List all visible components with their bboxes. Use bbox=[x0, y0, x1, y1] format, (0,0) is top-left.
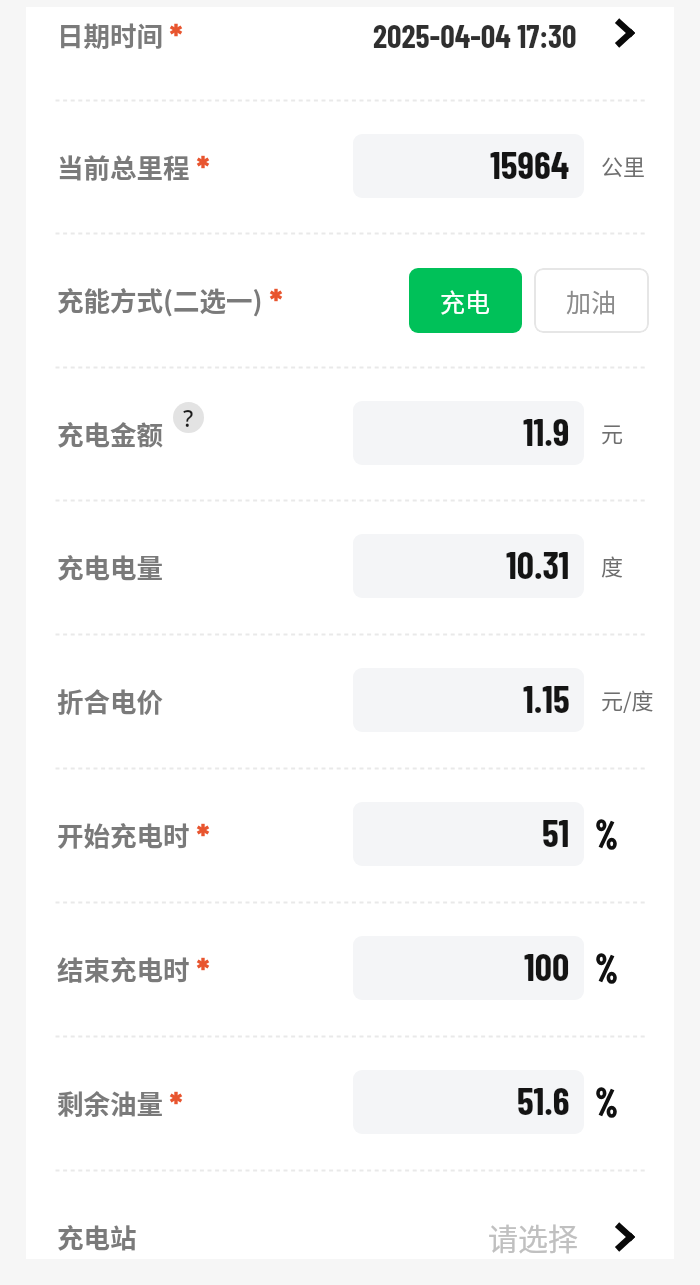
button[interactable]: 11.9 bbox=[353, 401, 584, 465]
staticText: 11.9 bbox=[523, 408, 570, 454]
staticText: 度 bbox=[601, 549, 624, 581]
staticText: 充能方式(二选一) bbox=[57, 280, 263, 318]
staticText: 折合电价 bbox=[57, 681, 163, 719]
button[interactable]: 充电 bbox=[409, 268, 522, 333]
staticText: 51 bbox=[542, 809, 570, 855]
staticText: 100 bbox=[524, 943, 570, 989]
staticText: 充电站 bbox=[57, 1217, 137, 1255]
staticText: 请选择 bbox=[488, 1215, 578, 1258]
staticText: 2025-04-04 17:30 bbox=[373, 16, 577, 54]
staticText: 剩余油量 bbox=[57, 1083, 163, 1121]
button[interactable]: 充电金额 bbox=[26, 367, 674, 501]
staticText: 充电金额 bbox=[57, 414, 163, 452]
staticText: 当前总里程 bbox=[57, 147, 190, 185]
button[interactable]: 充能方式(二选一) bbox=[26, 233, 674, 367]
staticText: ? bbox=[183, 402, 194, 433]
staticText: 开始充电时 bbox=[57, 815, 190, 853]
staticText: 公里 bbox=[601, 149, 646, 181]
button[interactable]: 剩余油量 bbox=[26, 1036, 674, 1170]
button[interactable]: 51.6 bbox=[353, 1070, 584, 1134]
staticText: 1.15 bbox=[523, 675, 570, 721]
button[interactable]: 折合电价 bbox=[26, 634, 674, 768]
button[interactable]: 结束充电时 bbox=[26, 902, 674, 1036]
button[interactable]: 充电电量 bbox=[26, 500, 674, 634]
button[interactable]: 当前总里程 bbox=[26, 100, 674, 234]
button[interactable]: 100 bbox=[353, 936, 584, 1000]
button[interactable]: 15964 bbox=[353, 134, 584, 198]
staticText: 结束充电时 bbox=[57, 949, 190, 987]
staticText: 15964 bbox=[490, 141, 570, 187]
staticText: 日期时间 bbox=[57, 15, 163, 53]
staticText: 元/度 bbox=[601, 683, 654, 715]
staticText: 加油 bbox=[566, 283, 617, 319]
other: 选择日期时间 bbox=[610, 18, 640, 48]
staticText: 充电电量 bbox=[57, 547, 163, 585]
staticText: 51.6 bbox=[517, 1077, 570, 1123]
other: 选择充电站 bbox=[610, 1222, 640, 1252]
button[interactable]: 51 bbox=[353, 802, 584, 866]
staticText: 充电 bbox=[440, 283, 491, 319]
button[interactable]: 说明 bbox=[173, 402, 204, 433]
button[interactable]: 加油 bbox=[534, 268, 649, 333]
staticText: 10.31 bbox=[506, 541, 570, 587]
button[interactable]: 充电站 bbox=[26, 1170, 674, 1285]
button[interactable]: 开始充电时 bbox=[26, 768, 674, 902]
button[interactable]: 日期时间 bbox=[26, 0, 674, 100]
button[interactable]: 10.31 bbox=[353, 534, 584, 598]
button[interactable]: 1.15 bbox=[353, 668, 584, 732]
staticText: 元 bbox=[601, 416, 624, 448]
